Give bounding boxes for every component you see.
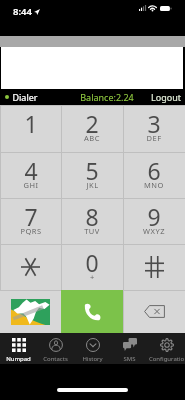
staticText: 5: [85, 155, 99, 186]
button[interactable]: 2: [61, 105, 123, 152]
staticText: 6: [147, 155, 161, 186]
button[interactable]: 9: [123, 198, 185, 244]
button[interactable]: Select country: [0, 290, 61, 333]
staticText: Numpad: [6, 355, 31, 363]
staticText: SMS: [123, 355, 136, 363]
staticText: DEF: [146, 133, 162, 143]
staticText: 1: [24, 108, 38, 139]
button[interactable]: History: [74, 333, 111, 364]
button[interactable]: 0: [61, 244, 123, 290]
button[interactable]: Dialer: [0, 89, 44, 105]
staticText: GHI: [23, 180, 39, 190]
staticText: Configuration: [148, 355, 185, 371]
button[interactable]: Delete: [123, 290, 185, 333]
staticText: 4: [24, 155, 38, 186]
staticText: MNO: [144, 180, 164, 190]
staticText: JKL: [86, 180, 99, 190]
button[interactable]: Contacts: [37, 333, 74, 364]
staticText: WXYZ: [143, 226, 165, 236]
staticText: 9: [147, 201, 161, 232]
button[interactable]: 8: [61, 198, 123, 244]
button[interactable]: Logout: [145, 89, 185, 105]
staticText: 8: [85, 201, 99, 232]
button[interactable]: Call: [61, 290, 123, 333]
button[interactable]: [0, 244, 61, 290]
button[interactable]: SMS: [111, 333, 148, 364]
staticText: 2: [85, 108, 99, 139]
staticText: PQRS: [20, 226, 42, 236]
button[interactable]: 3: [123, 105, 185, 152]
button[interactable]: 6: [123, 152, 185, 198]
staticText: 8:44: [13, 5, 32, 18]
button[interactable]: 5: [61, 152, 123, 198]
button[interactable]: [123, 244, 185, 290]
staticText: Contacts: [43, 355, 68, 363]
staticText: Balance:2.24: [80, 91, 134, 103]
button[interactable]: 7: [0, 198, 61, 244]
staticText: 7: [24, 201, 38, 232]
staticText: ABC: [84, 133, 100, 143]
staticText: 3: [147, 108, 161, 139]
button[interactable]: Configuration: [148, 333, 185, 364]
staticText: History: [82, 355, 103, 363]
staticText: +: [90, 272, 95, 282]
staticText: Dialer: [12, 91, 38, 103]
staticText: 0: [85, 247, 99, 278]
staticText: TUV: [84, 226, 100, 236]
staticText: Logout: [151, 91, 181, 103]
button[interactable]: Numpad: [0, 333, 37, 364]
button[interactable]: 1: [0, 105, 61, 152]
button[interactable]: 4: [0, 152, 61, 198]
